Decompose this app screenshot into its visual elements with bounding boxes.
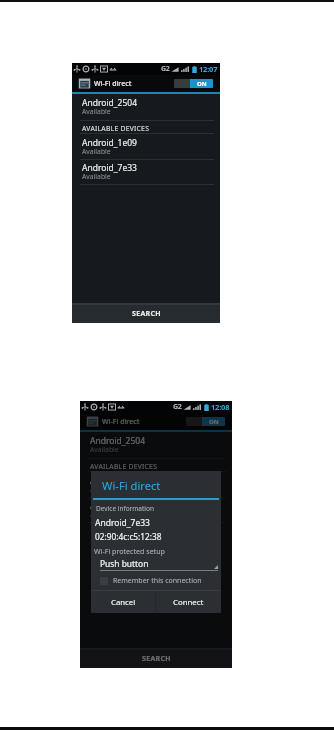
staticText: ON xyxy=(209,418,219,426)
staticText: Cancel xyxy=(111,597,136,608)
staticText: 12:08 xyxy=(211,402,230,412)
staticText: Android_2504 xyxy=(82,97,138,109)
staticText: Available xyxy=(82,107,111,116)
staticText: Wi-Fi protected setup xyxy=(94,546,165,556)
staticText: G2 xyxy=(173,402,182,412)
button[interactable]: Android_2504 xyxy=(80,432,232,459)
button[interactable]: SEARCH xyxy=(72,305,220,323)
staticText: G2 xyxy=(161,64,170,74)
button[interactable]: Wi-Fi direct on/off xyxy=(174,79,213,88)
staticText: Android_2504 xyxy=(90,435,146,447)
button[interactable]: Push button xyxy=(100,557,218,571)
staticText: Available xyxy=(90,485,119,494)
staticText: Android_7e33 xyxy=(95,517,150,529)
staticText: Android_7e33 xyxy=(82,162,137,174)
staticText: SEARCH xyxy=(142,654,171,664)
staticText: Push button xyxy=(100,558,149,569)
staticText: SEARCH xyxy=(132,309,161,319)
button[interactable]: Android_1e09 xyxy=(72,134,220,160)
staticText: Available xyxy=(90,510,119,519)
staticText: Device information xyxy=(96,504,154,513)
button[interactable]: Android_7e33 xyxy=(80,497,232,523)
button[interactable]: Android_1e09 xyxy=(80,472,232,498)
staticText: Remember this connection xyxy=(113,576,202,586)
staticText: Android_7e33 xyxy=(90,500,145,512)
staticText: AVAILABLE DEVICES xyxy=(82,124,150,133)
staticText: 12:07 xyxy=(199,64,218,74)
staticText: Android_1e09 xyxy=(90,475,145,487)
button[interactable]: Connect xyxy=(156,591,221,613)
button[interactable]: Cancel xyxy=(91,591,155,613)
staticText: Connect xyxy=(173,597,204,608)
staticText: Available xyxy=(82,147,111,156)
staticText: Android_1e09 xyxy=(82,137,137,149)
staticText: Available xyxy=(90,445,119,454)
button[interactable]: Remember this connection xyxy=(100,575,202,587)
staticText: Available xyxy=(82,172,111,181)
staticText: ON xyxy=(197,80,207,88)
button[interactable]: Android_7e33 xyxy=(72,159,220,185)
staticText: 02:90:4c:c5:12:38 xyxy=(95,531,162,542)
staticText: Wi-Fi direct xyxy=(94,79,132,89)
staticText: AVAILABLE DEVICES xyxy=(90,462,158,471)
button[interactable]: Wi-Fi direct on/off xyxy=(186,417,225,426)
staticText: Wi-Fi direct xyxy=(102,417,140,427)
staticText: Wi-Fi direct xyxy=(102,478,161,493)
button[interactable]: Android_2504 xyxy=(72,94,220,121)
button[interactable]: SEARCH xyxy=(80,650,232,668)
